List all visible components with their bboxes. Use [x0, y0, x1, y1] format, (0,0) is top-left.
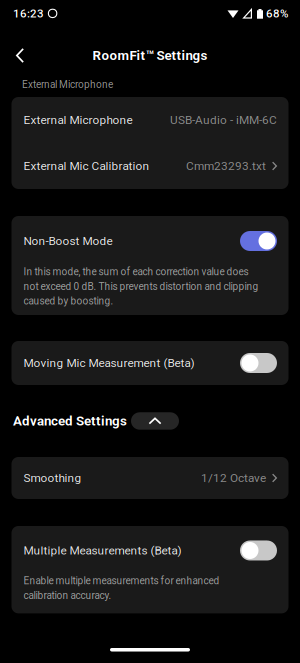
staticText: External Microphone: [23, 113, 132, 127]
button[interactable]: External Microphone: [11, 97, 288, 143]
staticText: USB-Audio - iMM-6C: [170, 113, 277, 127]
staticText: Non-Boost Mode: [23, 234, 112, 248]
button[interactable]: External Mic Calibration: [11, 143, 288, 189]
staticText: RoomFit™ Settings: [92, 48, 207, 63]
staticText: Multiple Measurements (Beta): [23, 544, 181, 557]
button[interactable]: Moving Mic Measurement (Beta): [11, 341, 288, 385]
button[interactable]: Non-Boost Mode: [11, 216, 288, 266]
staticText: 16:23: [13, 7, 44, 20]
staticText: Moving Mic Measurement (Beta): [23, 356, 194, 370]
button[interactable]: Collapse Advanced Settings: [131, 412, 179, 430]
staticText: Advanced Settings: [13, 413, 127, 429]
staticText: Smoothing: [23, 471, 81, 485]
staticText: 1/12 Octave: [201, 471, 266, 485]
button[interactable]: Back: [0, 39, 36, 72]
staticText: Cmm23293.txt: [186, 159, 266, 173]
button[interactable]: Multiple Measurements (Beta): [11, 526, 288, 575]
button[interactable]: Smoothing: [11, 457, 288, 499]
staticText: In this mode, the sum of each correction…: [23, 266, 258, 307]
staticText: Enable multiple measurements for enhance…: [23, 575, 219, 601]
staticText: 68%: [266, 7, 288, 20]
staticText: External Microphone: [22, 79, 113, 90]
staticText: External Mic Calibration: [23, 159, 149, 173]
